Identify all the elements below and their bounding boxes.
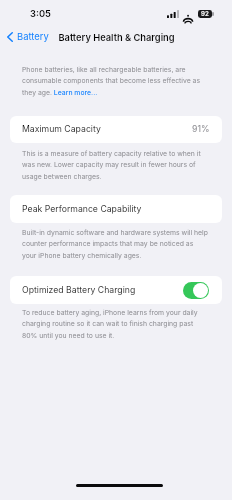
staticText: 92 bbox=[201, 10, 209, 18]
button[interactable]: Maximum Capacity bbox=[10, 116, 222, 143]
button[interactable]: Optimized Battery Charging bbox=[10, 276, 222, 304]
staticText: This is a measure of battery capacity re… bbox=[22, 149, 209, 181]
staticText: To reduce battery aging, iPhone learns f… bbox=[22, 308, 209, 340]
button[interactable]: Optimized Battery Charging bbox=[183, 282, 209, 299]
staticText: Battery bbox=[17, 31, 49, 42]
staticText: Peak Performance Capability bbox=[22, 204, 142, 215]
staticText: Built-in dynamic software and hardware s… bbox=[22, 228, 209, 260]
staticText: Maximum Capacity bbox=[22, 124, 101, 135]
staticText: 3:05 bbox=[30, 8, 51, 19]
staticText: Optimized Battery Charging bbox=[22, 285, 136, 296]
staticText: 91% bbox=[192, 124, 210, 135]
button[interactable]: Peak Performance Capability bbox=[10, 195, 222, 223]
staticText: Battery Health & Charging bbox=[58, 32, 175, 43]
staticText: Phone batteries, like all rechargeable b… bbox=[22, 65, 209, 97]
button[interactable]: Battery bbox=[2, 28, 53, 45]
